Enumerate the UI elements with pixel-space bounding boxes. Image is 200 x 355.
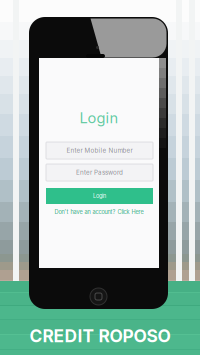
button[interactable]: Login [46,188,153,204]
button[interactable]: Enter Password [46,164,153,181]
staticText: Login [79,109,118,127]
button[interactable]: Enter Mobile Number [46,142,153,159]
staticText: Enter Password [76,169,123,176]
staticText: Enter Mobile Number [66,147,132,154]
staticText: Don't have an account? Click Here [54,209,143,215]
staticText: Login [93,193,106,199]
button[interactable]: Don't have an account? Click Here [39,207,159,217]
staticText: CREDIT ROPOSO [29,325,170,346]
